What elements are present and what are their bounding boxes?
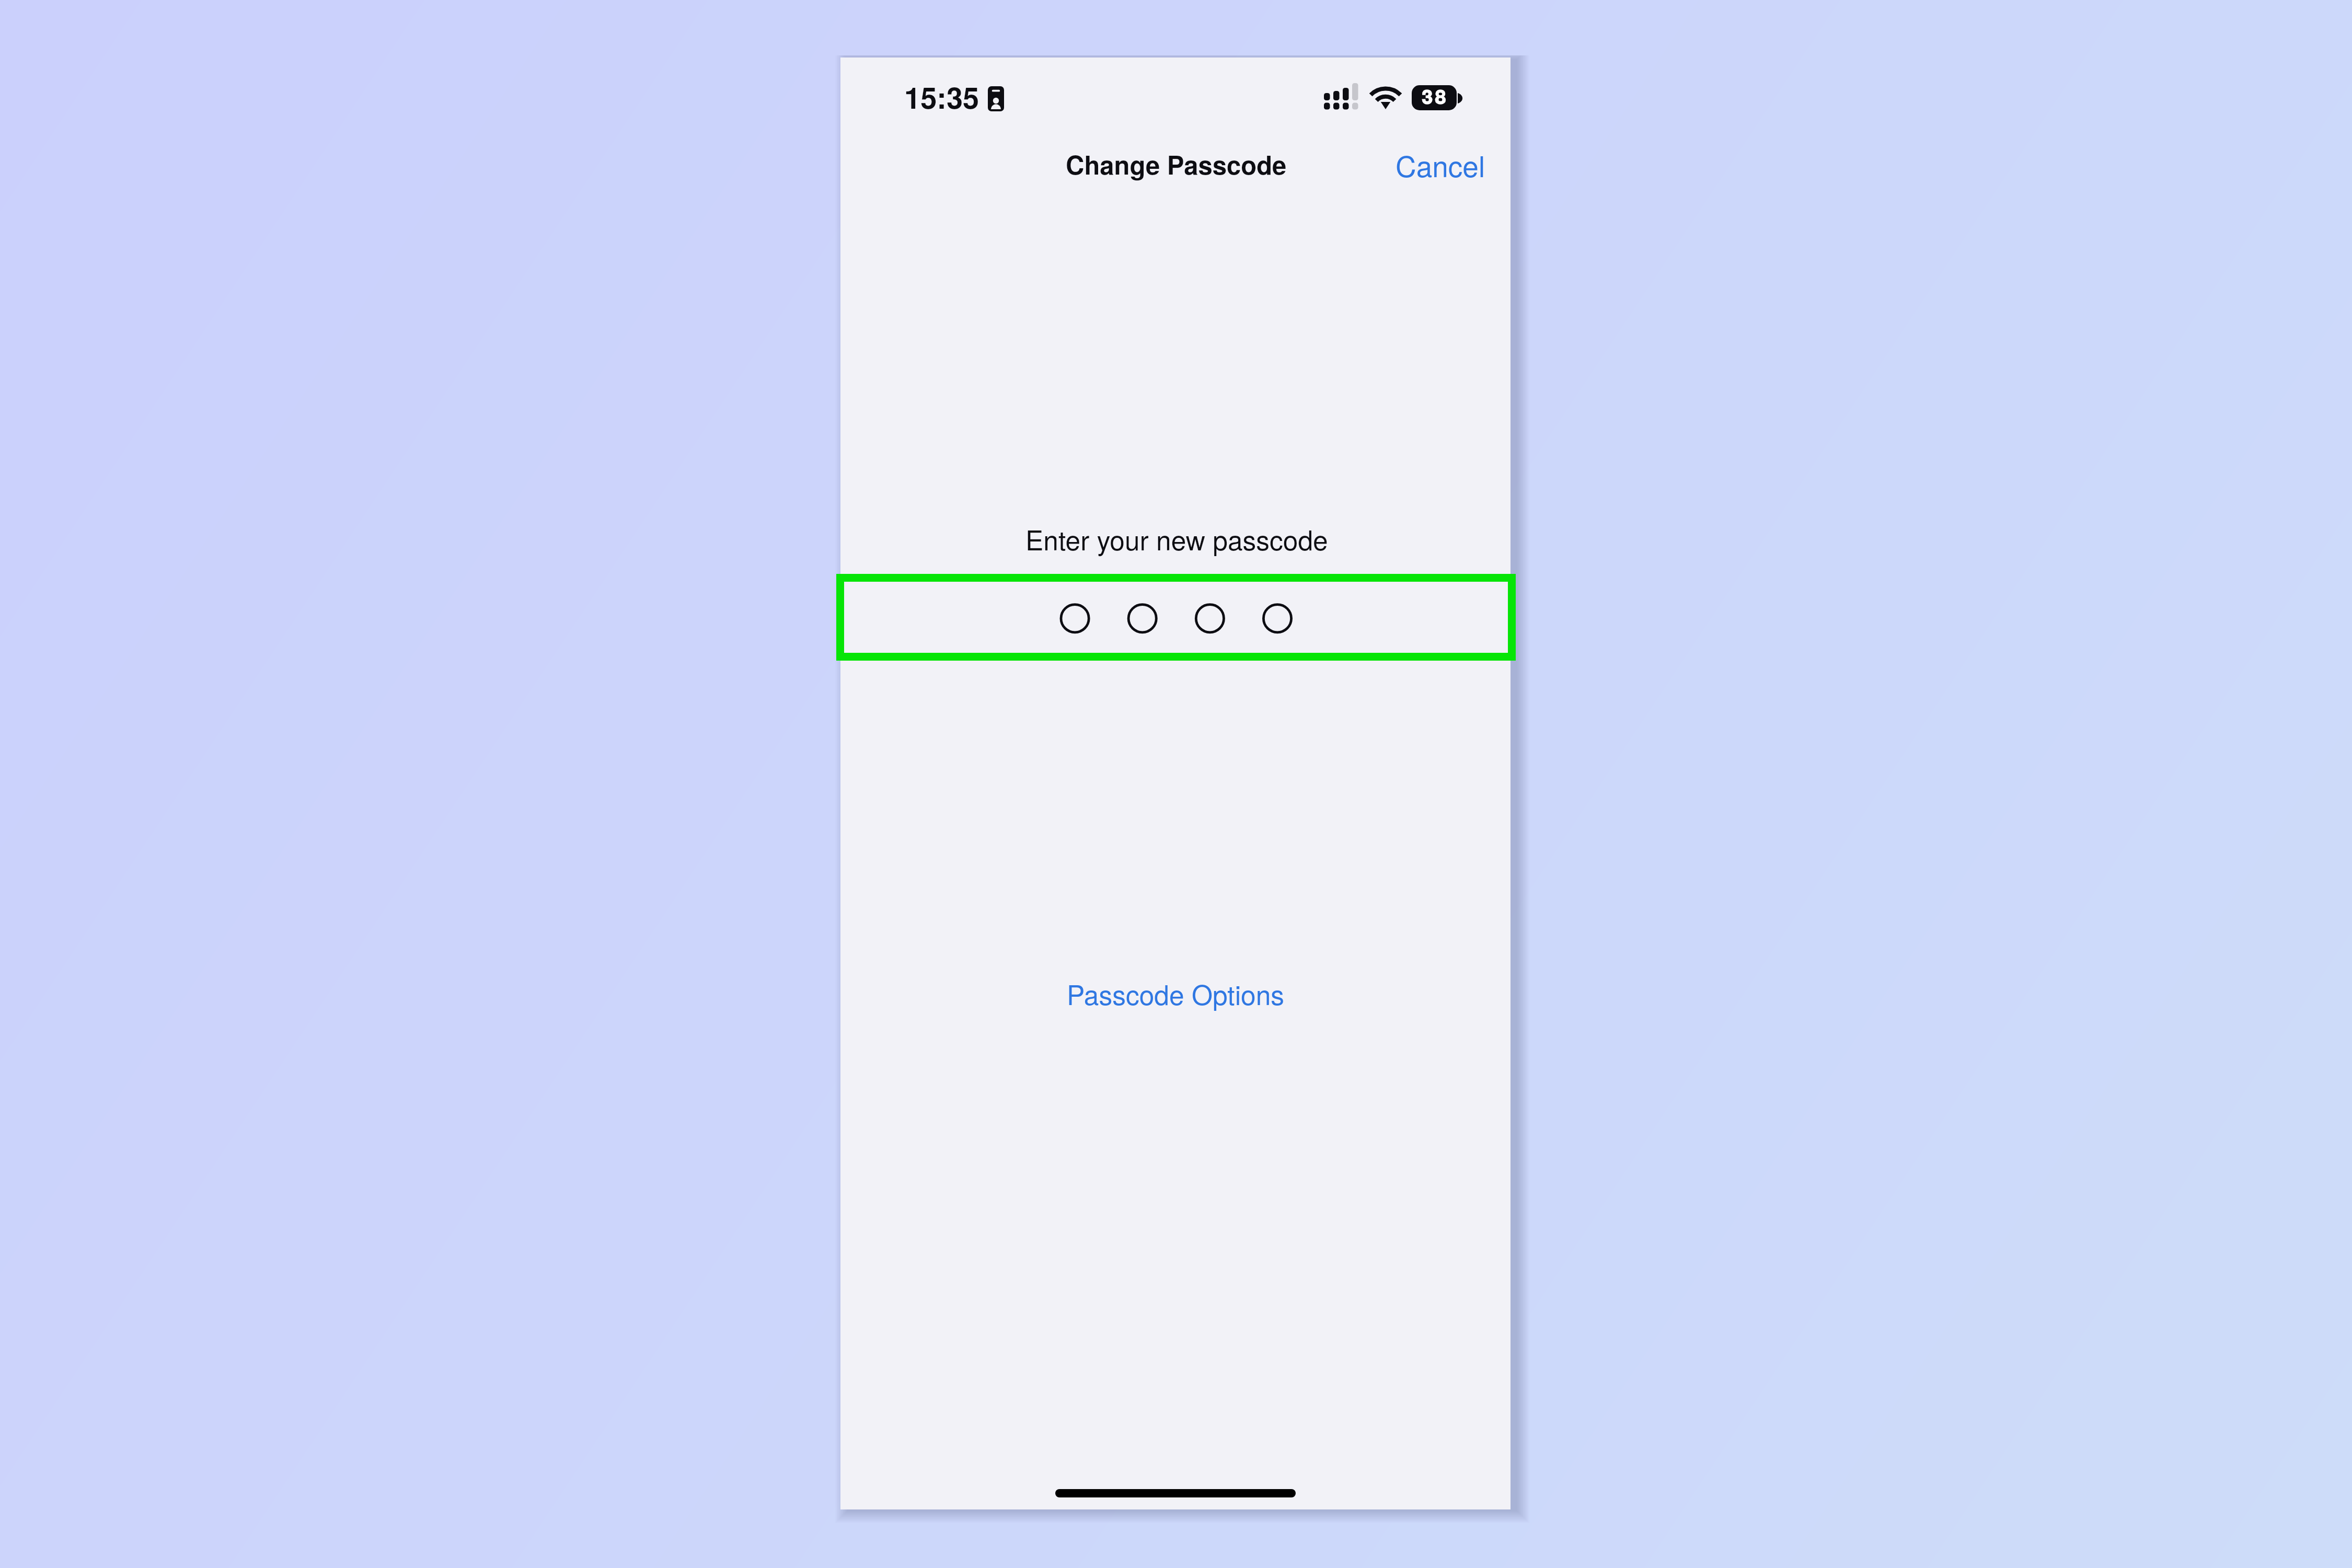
button[interactable]: Passcode Options — [1039, 965, 1312, 1022]
staticText: Cancel — [1396, 144, 1485, 186]
staticText: Enter your new passcode — [1025, 520, 1328, 558]
staticText: 15:35 — [904, 76, 979, 118]
button[interactable]: Cancel — [1379, 135, 1502, 194]
other: Mobile signal — [1324, 83, 1358, 110]
button[interactable]: Passcode entry field — [840, 574, 1511, 661]
other: Contact card — [988, 86, 1004, 111]
staticText: Change Passcode — [1066, 146, 1287, 182]
staticText: 38 — [1422, 85, 1448, 107]
staticText: Passcode Options — [1067, 974, 1285, 1013]
other: Wi-Fi — [1368, 84, 1403, 110]
